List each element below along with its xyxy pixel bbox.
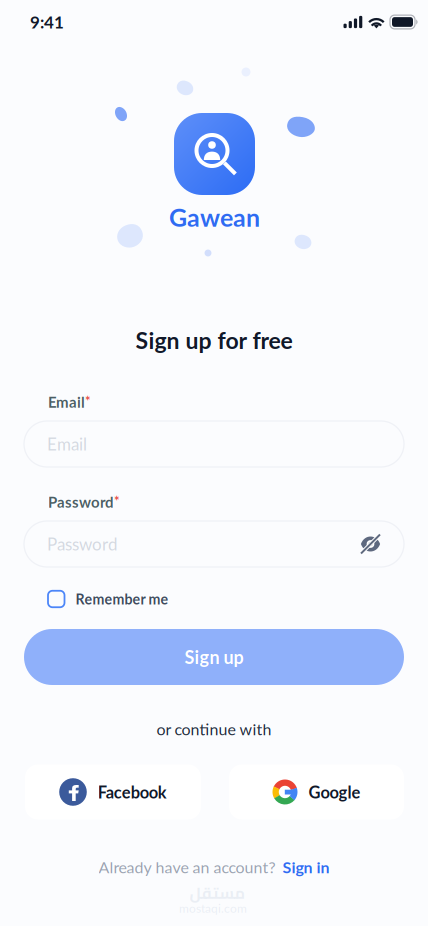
button[interactable]: Sign up (24, 629, 404, 685)
staticText: مستقل (189, 878, 245, 908)
staticText: Sign up (184, 646, 243, 668)
button[interactable]: Remember me (48, 586, 380, 612)
staticText: Google (308, 782, 360, 802)
staticText: Gawean (169, 202, 260, 232)
staticText: 9:41 (30, 12, 64, 32)
staticText: Email (48, 393, 85, 411)
staticText: Password (47, 534, 118, 554)
staticText: * (85, 393, 91, 409)
button[interactable]: Google (229, 764, 404, 819)
staticText: Sign in (282, 857, 329, 877)
staticText: Facebook (98, 782, 167, 802)
button[interactable]: Facebook (25, 764, 201, 819)
staticText: or continue with (156, 719, 271, 739)
staticText: Remember me (75, 590, 168, 607)
staticText: Password (48, 493, 114, 511)
staticText: Email (47, 434, 87, 454)
staticText: * (114, 493, 120, 509)
staticText: Already have an account? (98, 857, 275, 877)
staticText: Sign up for free (135, 326, 292, 354)
staticText: mostaqi.com (179, 901, 247, 915)
button[interactable]: Show password (360, 534, 381, 554)
button[interactable]: Sign in (282, 857, 329, 877)
